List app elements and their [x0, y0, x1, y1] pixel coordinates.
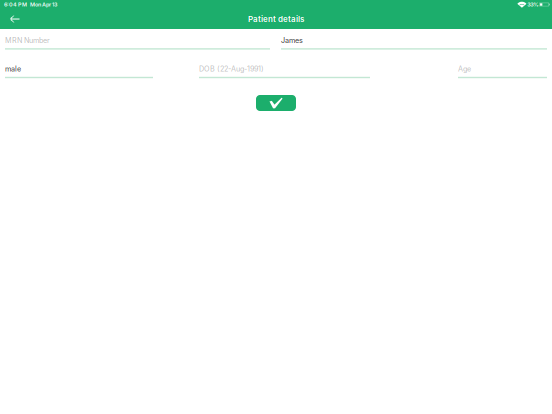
staticText: MRN Number: [5, 36, 50, 45]
staticText: male: [5, 65, 21, 73]
staticText: Mon Apr 13: [27, 1, 57, 8]
staticText: 6:04 PM: [4, 1, 27, 8]
button[interactable]: Save patient details: [256, 95, 296, 111]
button[interactable]: MRN Number: [5, 36, 270, 50]
staticText: James: [281, 36, 303, 45]
staticText: Patient details: [248, 14, 304, 24]
staticText: 33%: [526, 1, 539, 8]
button[interactable]: Age: [458, 65, 547, 78]
staticText: DOB (22-Aug-1991): [199, 65, 264, 73]
button[interactable]: DOB (22-Aug-1991): [199, 65, 370, 78]
button[interactable]: Back: [0, 11, 24, 27]
button[interactable]: male: [5, 65, 153, 78]
staticText: Age: [458, 65, 471, 73]
button[interactable]: James: [281, 36, 547, 50]
